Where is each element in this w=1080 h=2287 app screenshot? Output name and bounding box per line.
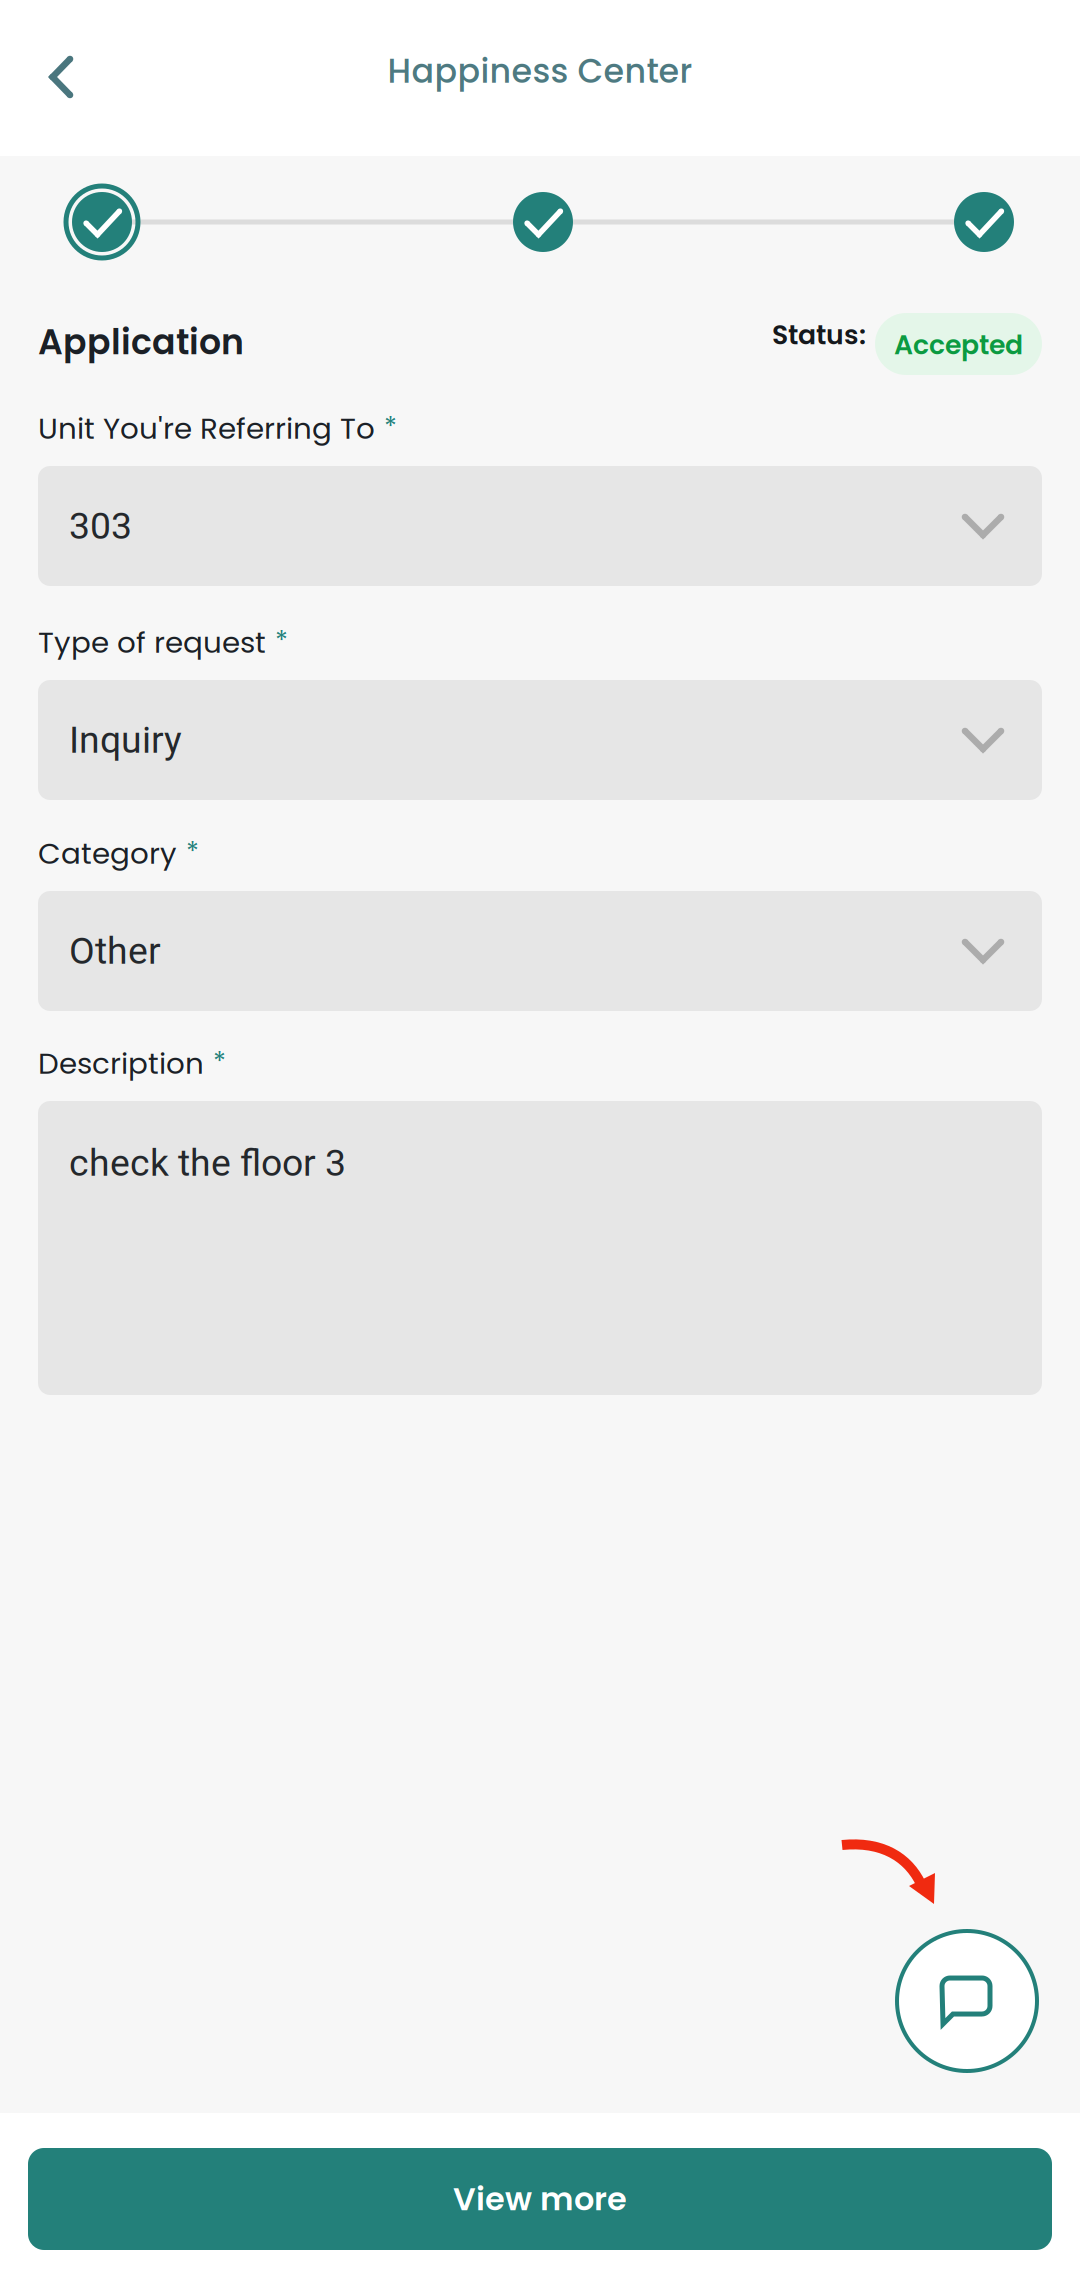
button[interactable]: Chat: [897, 1931, 1037, 2071]
staticText: *: [275, 622, 288, 659]
staticText: Other: [69, 929, 161, 973]
staticText: check the floor 3: [69, 1141, 346, 1185]
button[interactable]: Other: [38, 891, 1042, 1011]
staticText: Accepted: [894, 326, 1023, 364]
staticText: *: [186, 833, 199, 870]
staticText: Happiness Center: [387, 48, 692, 94]
staticText: Type of request: [38, 622, 266, 663]
button[interactable]: 303: [38, 466, 1042, 586]
staticText: Status:: [772, 316, 866, 354]
staticText: Unit You're Referring To: [38, 408, 375, 449]
staticText: Category: [38, 833, 177, 874]
staticText: Application: [38, 318, 244, 366]
button[interactable]: Inquiry: [38, 680, 1042, 800]
staticText: Description: [38, 1043, 204, 1084]
button[interactable]: View more: [28, 2148, 1052, 2250]
staticText: Inquiry: [69, 718, 182, 762]
staticText: *: [213, 1043, 226, 1080]
staticText: *: [384, 408, 397, 445]
button[interactable]: Back: [0, 28, 114, 128]
staticText: View more: [453, 2177, 627, 2221]
staticText: 303: [69, 504, 132, 548]
